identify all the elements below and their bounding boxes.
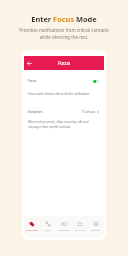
button[interactable]: Focus on — [93, 80, 99, 83]
staticText: Exceptions — [28, 110, 43, 114]
staticText: Focus — [28, 79, 37, 83]
button[interactable]: Focus — [24, 76, 104, 86]
staticText: Focus — [58, 60, 71, 66]
staticText: My Work — [75, 228, 85, 231]
button[interactable]: Favourites — [24, 218, 40, 237]
button[interactable]: Calls — [40, 218, 56, 237]
staticText: Focus mode silences calls and hides noti… — [28, 92, 90, 96]
button[interactable]: Exceptions — [24, 108, 104, 115]
staticText: 5 Contacts — [82, 110, 96, 114]
staticText: Prioritize notifications from critical c… — [0, 27, 128, 40]
button[interactable]: Settings — [88, 218, 104, 237]
staticText: Settings — [91, 228, 101, 231]
button[interactable]: My Work — [72, 218, 88, 237]
staticText: Favourites — [26, 228, 38, 231]
button[interactable]: Back — [25, 59, 34, 68]
staticText: Messages — [58, 228, 70, 231]
staticText: Calls — [45, 228, 51, 231]
staticText: When in focus mode, allow incoming calls… — [28, 120, 89, 129]
button[interactable]: Messages — [56, 218, 72, 237]
staticText: Enter Focus Mode — [0, 14, 128, 24]
